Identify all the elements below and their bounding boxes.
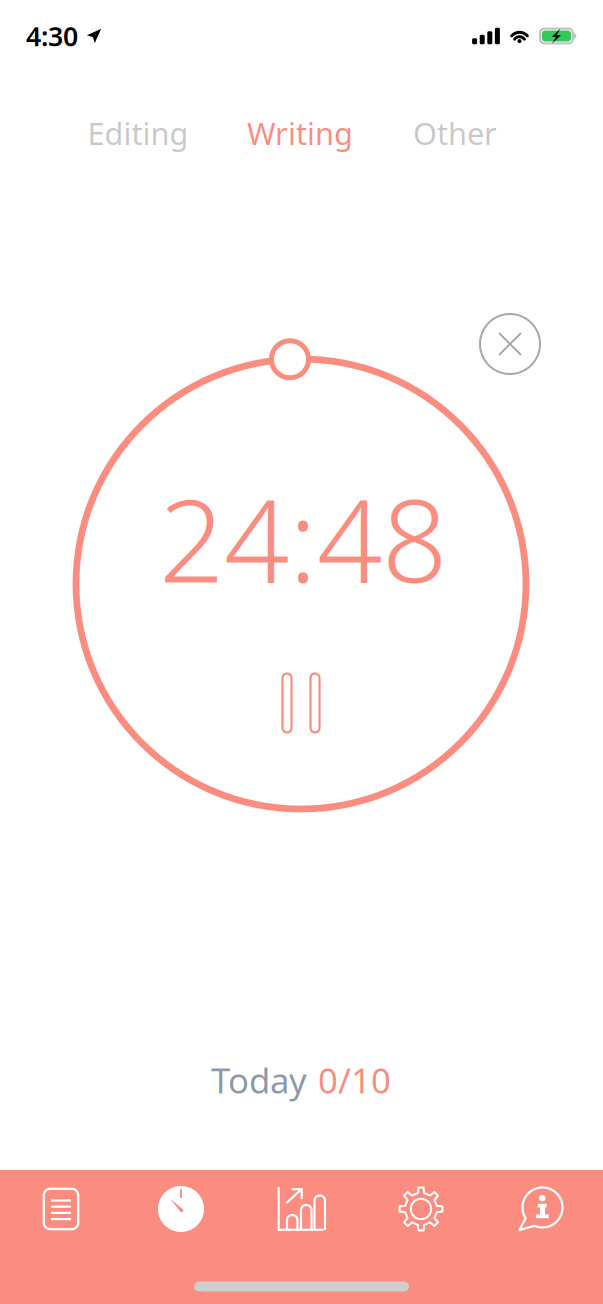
button[interactable]: Timer <box>133 1171 229 1247</box>
button[interactable]: Writing <box>225 105 375 161</box>
button[interactable]: Settings <box>373 1171 469 1247</box>
staticText: 0/10 <box>318 1057 391 1103</box>
staticText: Other <box>413 113 497 153</box>
button[interactable]: Tasks <box>13 1171 109 1247</box>
staticText: 24:48 <box>159 462 447 614</box>
button[interactable]: Statistics <box>253 1171 349 1247</box>
staticText: Today <box>211 1057 307 1103</box>
button[interactable]: Editing <box>63 105 213 161</box>
staticText: 4:30 <box>26 18 78 54</box>
button[interactable]: Info <box>493 1171 589 1247</box>
staticText: Writing <box>247 113 353 153</box>
button[interactable]: Other <box>380 105 530 161</box>
button[interactable]: Close timer <box>479 313 541 375</box>
staticText: Editing <box>87 113 188 153</box>
